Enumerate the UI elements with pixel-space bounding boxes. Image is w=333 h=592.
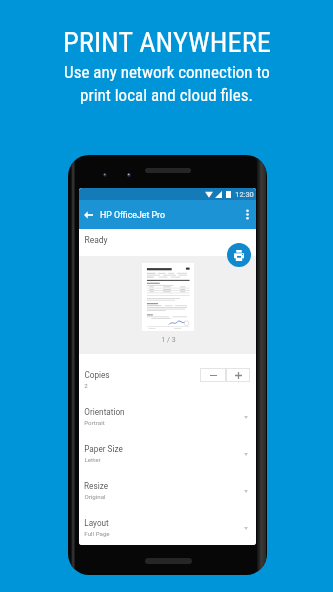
button[interactable]: Print — [227, 243, 251, 267]
staticText: 2 — [84, 382, 88, 389]
staticText: Layout — [84, 518, 109, 528]
staticText: PRINT ANYWHERE — [63, 26, 271, 59]
staticText: Full Page — [84, 530, 110, 537]
button[interactable]: Orientation — [79, 391, 256, 428]
staticText: print local and cloud files. — [80, 85, 253, 105]
staticText: 12:30 — [235, 190, 254, 199]
button[interactable]: Copies — [79, 354, 256, 391]
staticText: Portrait — [84, 419, 105, 426]
button[interactable]: Increase copies — [226, 368, 250, 382]
staticText: Use any network connection to — [64, 62, 270, 82]
staticText: Copies — [84, 370, 110, 380]
button[interactable]: More options — [239, 206, 256, 223]
staticText: 1 / 3 — [161, 336, 176, 344]
staticText: Paper Size — [84, 444, 123, 454]
staticText: Ready — [84, 235, 108, 245]
button[interactable]: Decrease copies — [200, 368, 226, 382]
staticText: Orientation — [84, 407, 125, 417]
staticText: Original — [84, 493, 106, 500]
staticText: Resize — [84, 481, 108, 491]
button[interactable]: Paper Size — [79, 428, 256, 465]
button[interactable]: Back — [81, 207, 96, 222]
button[interactable]: Resize — [79, 465, 256, 502]
staticText: HP OfficeJet Pro — [100, 210, 165, 220]
staticText: Letter — [84, 456, 101, 463]
button[interactable]: Layout — [79, 502, 256, 539]
